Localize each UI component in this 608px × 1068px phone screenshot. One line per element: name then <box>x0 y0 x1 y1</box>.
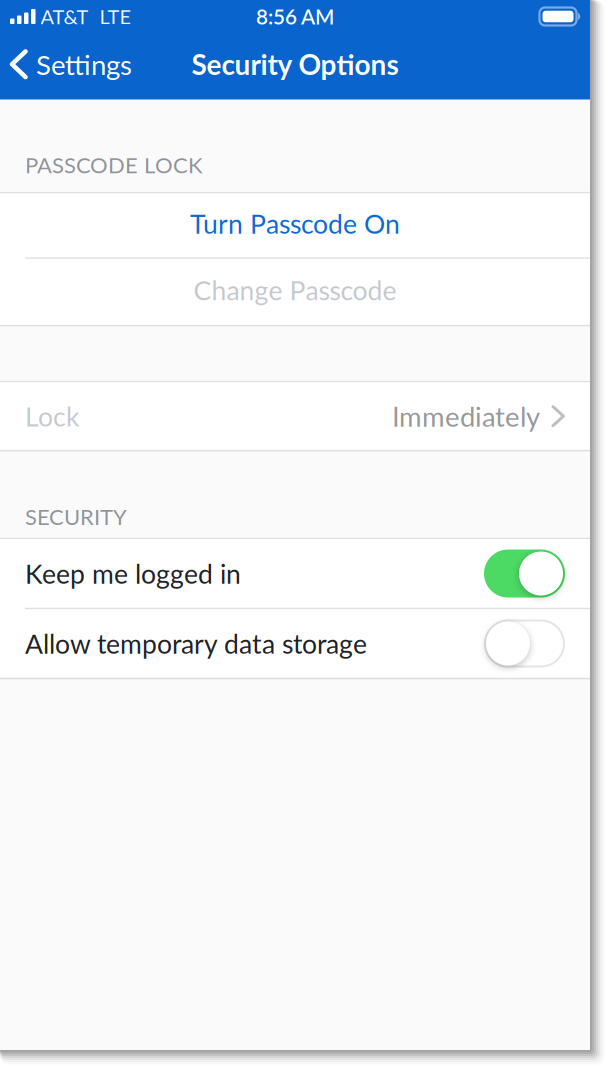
button[interactable]: Turn Passcode On <box>0 193 590 257</box>
staticText: Immediately <box>392 400 540 433</box>
staticText: PASSCODE LOCK <box>25 151 203 178</box>
staticText: LTE <box>99 4 131 28</box>
staticText: Turn Passcode On <box>190 207 400 239</box>
staticText: Change Passcode <box>193 274 396 306</box>
button[interactable]: Change Passcode <box>0 259 590 325</box>
staticText: Lock <box>25 400 79 432</box>
button[interactable]: Lock <box>0 382 590 450</box>
staticText: 8:56 AM <box>256 4 334 29</box>
button[interactable]: Back to Settings <box>9 48 132 81</box>
staticText: AT&T <box>40 4 88 28</box>
staticText: Settings <box>36 48 132 81</box>
staticText: Allow temporary data storage <box>25 628 367 659</box>
staticText: SECURITY <box>25 503 127 530</box>
button[interactable]: Allow temporary data storage <box>0 609 590 678</box>
staticText: Security Options <box>191 47 398 81</box>
button[interactable]: Keep me logged in <box>0 539 590 608</box>
staticText: Keep me logged in <box>25 558 241 589</box>
